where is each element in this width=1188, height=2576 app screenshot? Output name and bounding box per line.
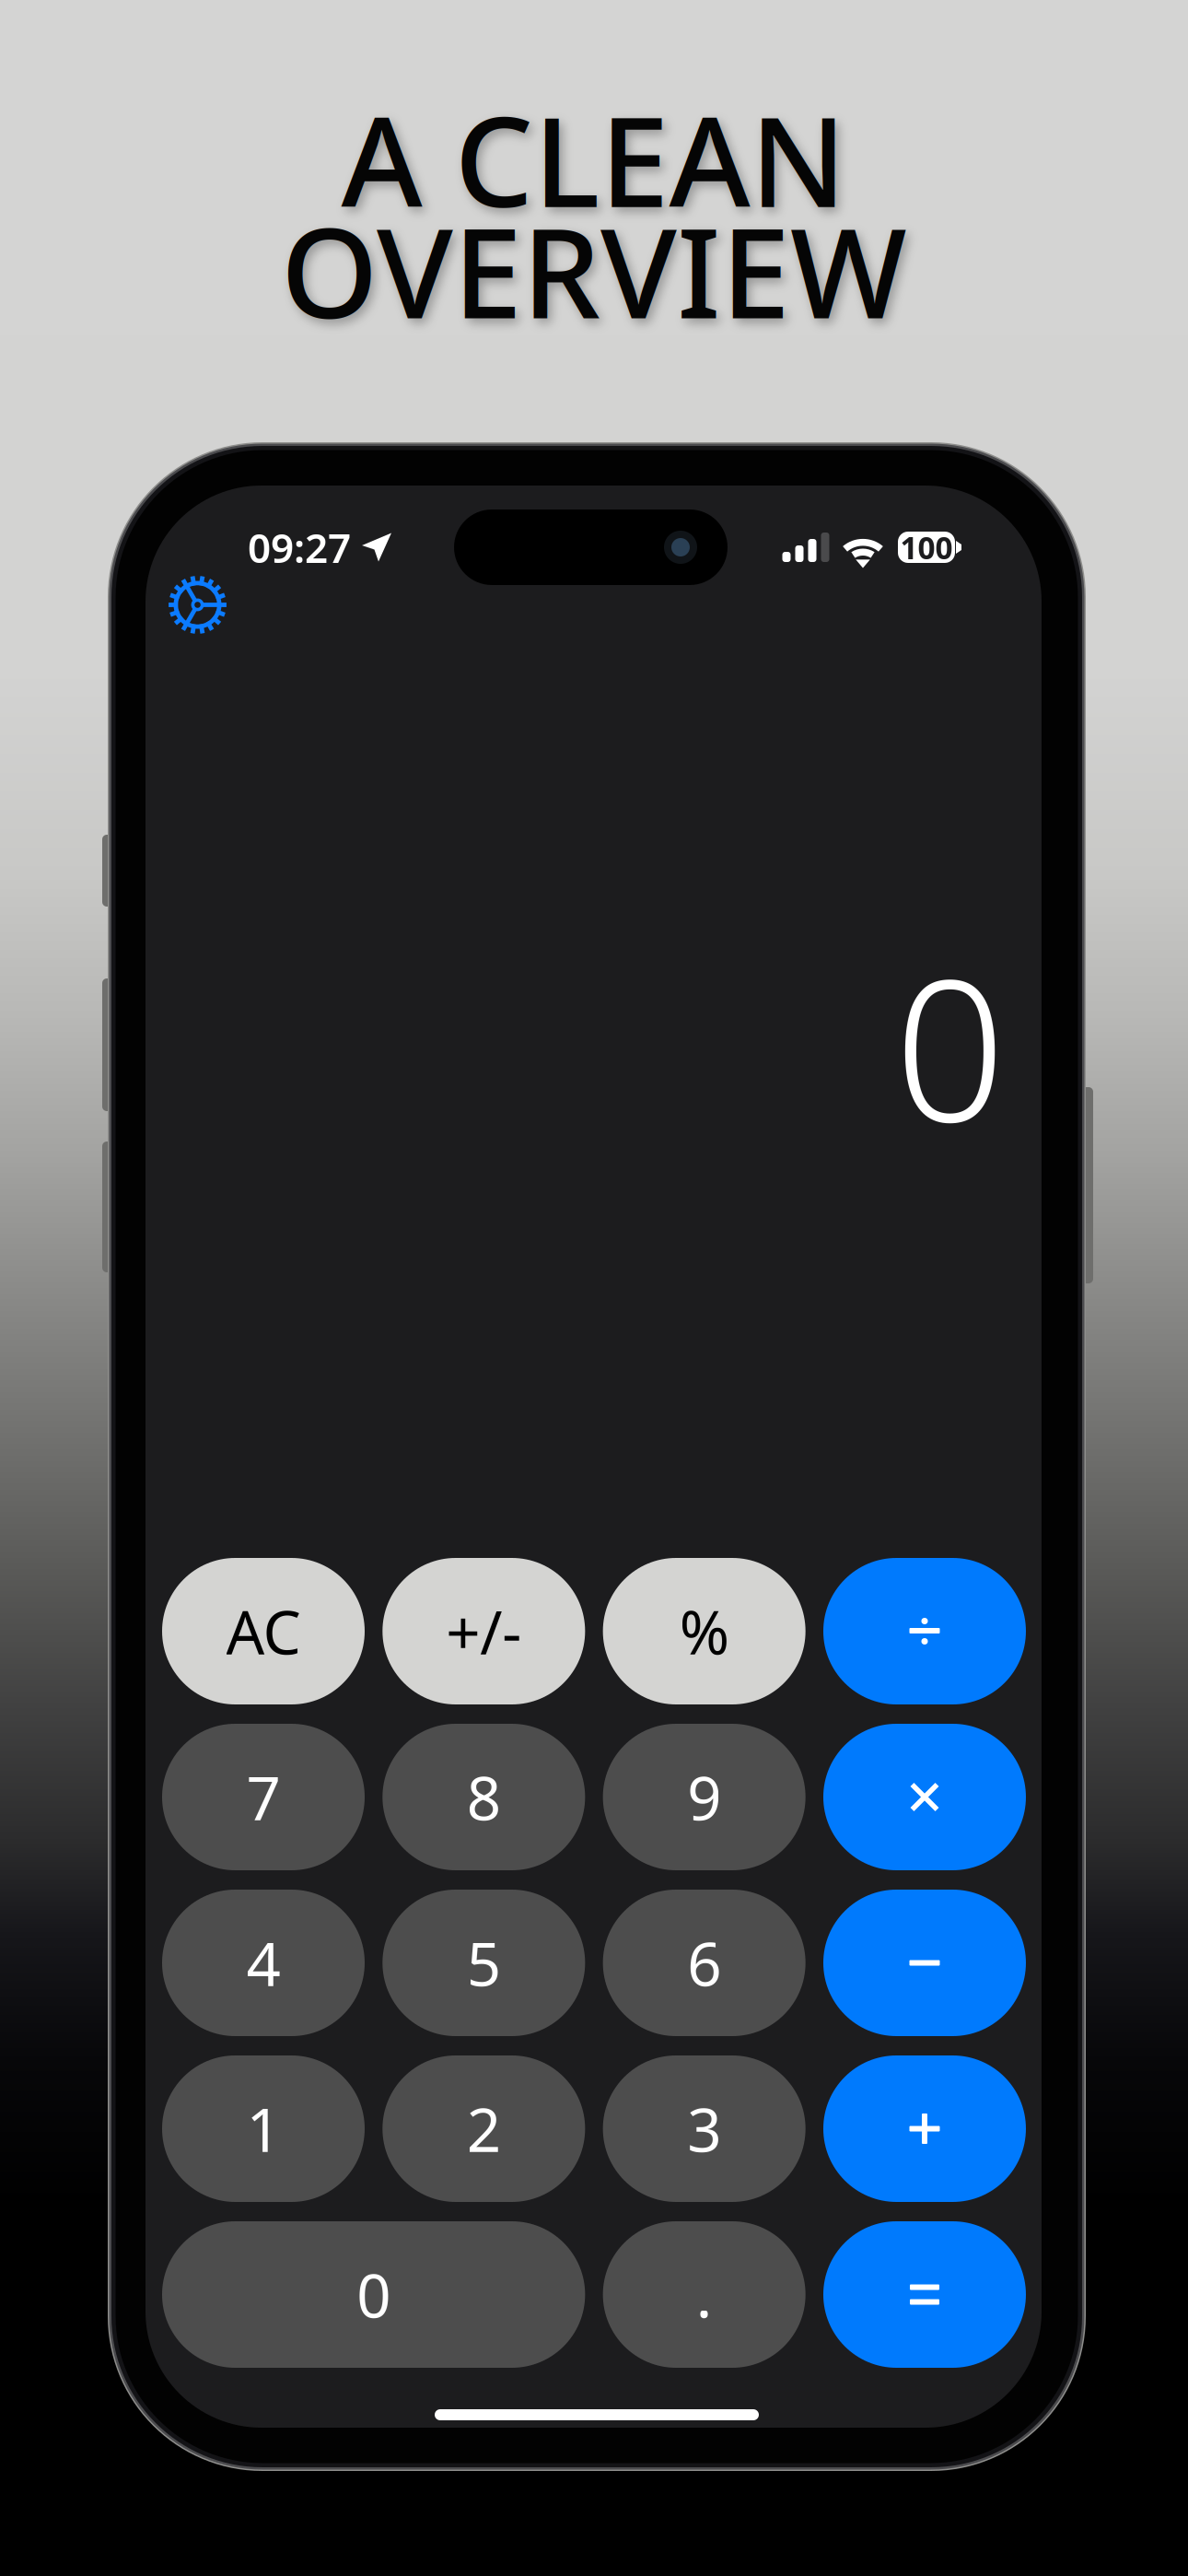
button[interactable]: Equals — [823, 2221, 1026, 2368]
staticText: 3 — [687, 2089, 721, 2169]
button[interactable]: 7 — [162, 1724, 365, 1870]
button[interactable]: 4 — [162, 1890, 365, 2036]
button[interactable]: Plus — [823, 2055, 1026, 2202]
staticText: 0 — [357, 2255, 391, 2335]
button[interactable]: 3 — [603, 2055, 806, 2202]
staticText: 9 — [687, 1757, 721, 1837]
button[interactable]: 8 — [382, 1724, 585, 1870]
staticText: 4 — [246, 1923, 280, 2003]
staticText: . — [696, 2255, 713, 2335]
staticText: 100 — [900, 527, 953, 568]
button[interactable]: 5 — [382, 1890, 585, 2036]
staticText: 8 — [467, 1757, 501, 1837]
staticText: 1 — [246, 2089, 280, 2169]
button[interactable]: 6 — [603, 1890, 806, 2036]
staticText: 0 — [894, 916, 1006, 1175]
button[interactable]: . — [603, 2221, 806, 2368]
staticText: +/- — [446, 1591, 522, 1671]
staticText: 7 — [246, 1757, 280, 1837]
staticText: 09:27 — [248, 520, 351, 574]
button[interactable]: Minus — [823, 1890, 1026, 2036]
button[interactable]: Multiply — [823, 1724, 1026, 1870]
button[interactable]: % — [603, 1558, 806, 1704]
staticText: % — [679, 1591, 729, 1671]
staticText: A CLEAN — [341, 76, 847, 241]
staticText: 6 — [687, 1923, 721, 2003]
button[interactable]: Divide — [823, 1558, 1026, 1704]
button[interactable]: AC — [162, 1558, 365, 1704]
button[interactable]: Settings — [148, 556, 247, 654]
button[interactable]: +/- — [382, 1558, 585, 1704]
staticText: OVERVIEW — [281, 188, 907, 352]
button[interactable]: 2 — [382, 2055, 585, 2202]
button[interactable]: 0 — [162, 2221, 585, 2368]
staticText: 5 — [467, 1923, 501, 2003]
staticText: AC — [226, 1591, 301, 1671]
button[interactable]: 9 — [603, 1724, 806, 1870]
button[interactable]: 1 — [162, 2055, 365, 2202]
staticText: 2 — [467, 2089, 501, 2169]
